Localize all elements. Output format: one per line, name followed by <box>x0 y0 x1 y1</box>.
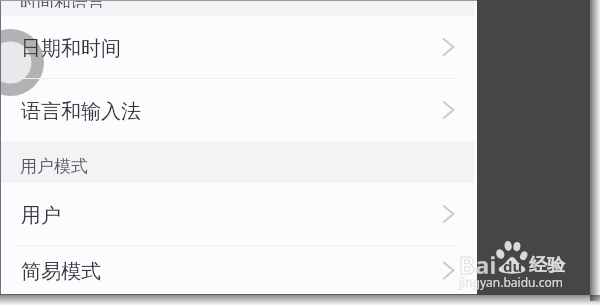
staticText: 经验 <box>529 254 565 277</box>
staticText: du <box>503 256 523 276</box>
staticText: jingyan.baidu.com <box>459 274 563 290</box>
button[interactable]: 日期和时间 <box>0 16 477 78</box>
staticText: 用户 <box>21 203 61 228</box>
staticText: 时间和语言 <box>20 0 105 8</box>
button[interactable]: 语言和输入法 <box>0 79 477 141</box>
staticText: Bai <box>459 248 497 281</box>
button[interactable]: 用户 <box>0 183 477 245</box>
button[interactable]: 简易模式 <box>0 246 477 295</box>
staticText: Bai <box>459 248 497 281</box>
staticText: 简易模式 <box>21 259 101 284</box>
staticText: jingyan.baidu.com <box>459 274 563 290</box>
staticText: 用户模式 <box>20 156 88 177</box>
staticText: 日期和时间 <box>21 36 121 61</box>
staticText: 语言和输入法 <box>21 99 141 124</box>
